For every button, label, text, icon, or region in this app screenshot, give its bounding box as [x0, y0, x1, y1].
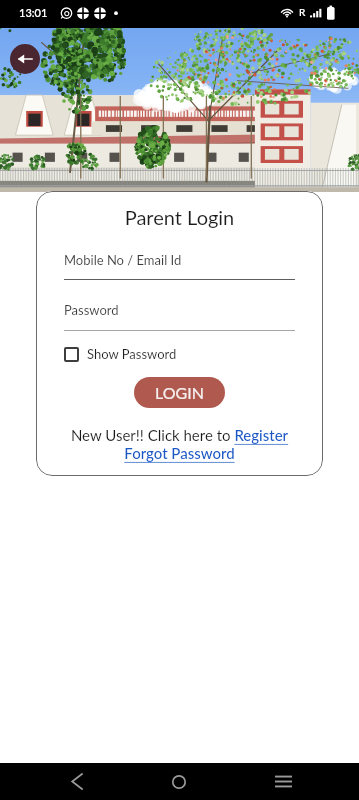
staticText: LOGIN	[155, 383, 204, 402]
button[interactable]: Home	[159, 763, 199, 800]
staticText: Mobile No / Email Id	[64, 252, 182, 268]
button[interactable]: Back	[56, 763, 96, 800]
staticText: Parent Login	[36, 205, 323, 229]
staticText: 13:01	[19, 6, 48, 19]
button[interactable]: LOGIN	[134, 377, 225, 408]
button[interactable]: Recent apps	[263, 763, 303, 800]
button[interactable]: Show Password	[64, 346, 177, 362]
button[interactable]: New User!! Click here to Register Forgot…	[36, 426, 323, 462]
staticText: R	[299, 6, 306, 18]
staticText: Show Password	[87, 346, 177, 362]
button[interactable]: Back	[10, 44, 40, 74]
staticText: Password	[64, 302, 119, 318]
